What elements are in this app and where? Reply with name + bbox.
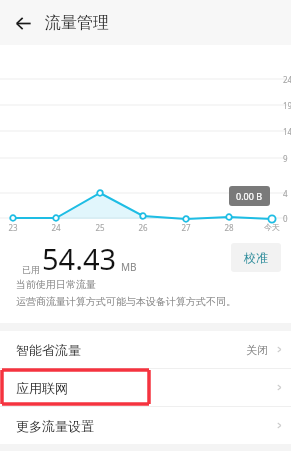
- staticText: 0: [283, 213, 288, 224]
- staticText: 54.43: [42, 239, 117, 278]
- staticText: 运营商流量计算方式可能与本设备计算方式不同。: [16, 295, 236, 308]
- staticText: 应用联网: [16, 380, 68, 396]
- staticText: 14: [283, 126, 291, 137]
- staticText: 24: [42, 222, 70, 233]
- button[interactable]: 应用联网: [0, 369, 291, 406]
- staticText: 28: [215, 222, 243, 233]
- staticText: 校准: [244, 250, 268, 265]
- button[interactable]: 智能省流量: [0, 331, 291, 368]
- staticText: 23: [0, 222, 27, 233]
- staticText: 4: [283, 188, 288, 199]
- staticText: 关闭: [246, 343, 268, 357]
- button[interactable]: Back: [8, 8, 38, 38]
- staticText: 26: [129, 222, 157, 233]
- staticText: 今天: [258, 222, 286, 232]
- staticText: 19: [283, 100, 291, 111]
- staticText: 24: [283, 74, 291, 85]
- staticText: MB: [121, 260, 137, 274]
- staticText: 当前使用日常流量: [16, 278, 96, 291]
- button[interactable]: 校准: [231, 243, 281, 272]
- staticText: 更多流量设置: [16, 418, 94, 434]
- staticText: 25: [86, 222, 114, 233]
- button[interactable]: 更多流量设置: [0, 407, 291, 444]
- staticText: 智能省流量: [16, 342, 81, 358]
- staticText: 流量管理: [45, 13, 109, 33]
- staticText: 9: [283, 153, 288, 164]
- staticText: 27: [172, 222, 200, 233]
- staticText: 0.00 B: [236, 190, 263, 202]
- staticText: 已用: [22, 264, 40, 275]
